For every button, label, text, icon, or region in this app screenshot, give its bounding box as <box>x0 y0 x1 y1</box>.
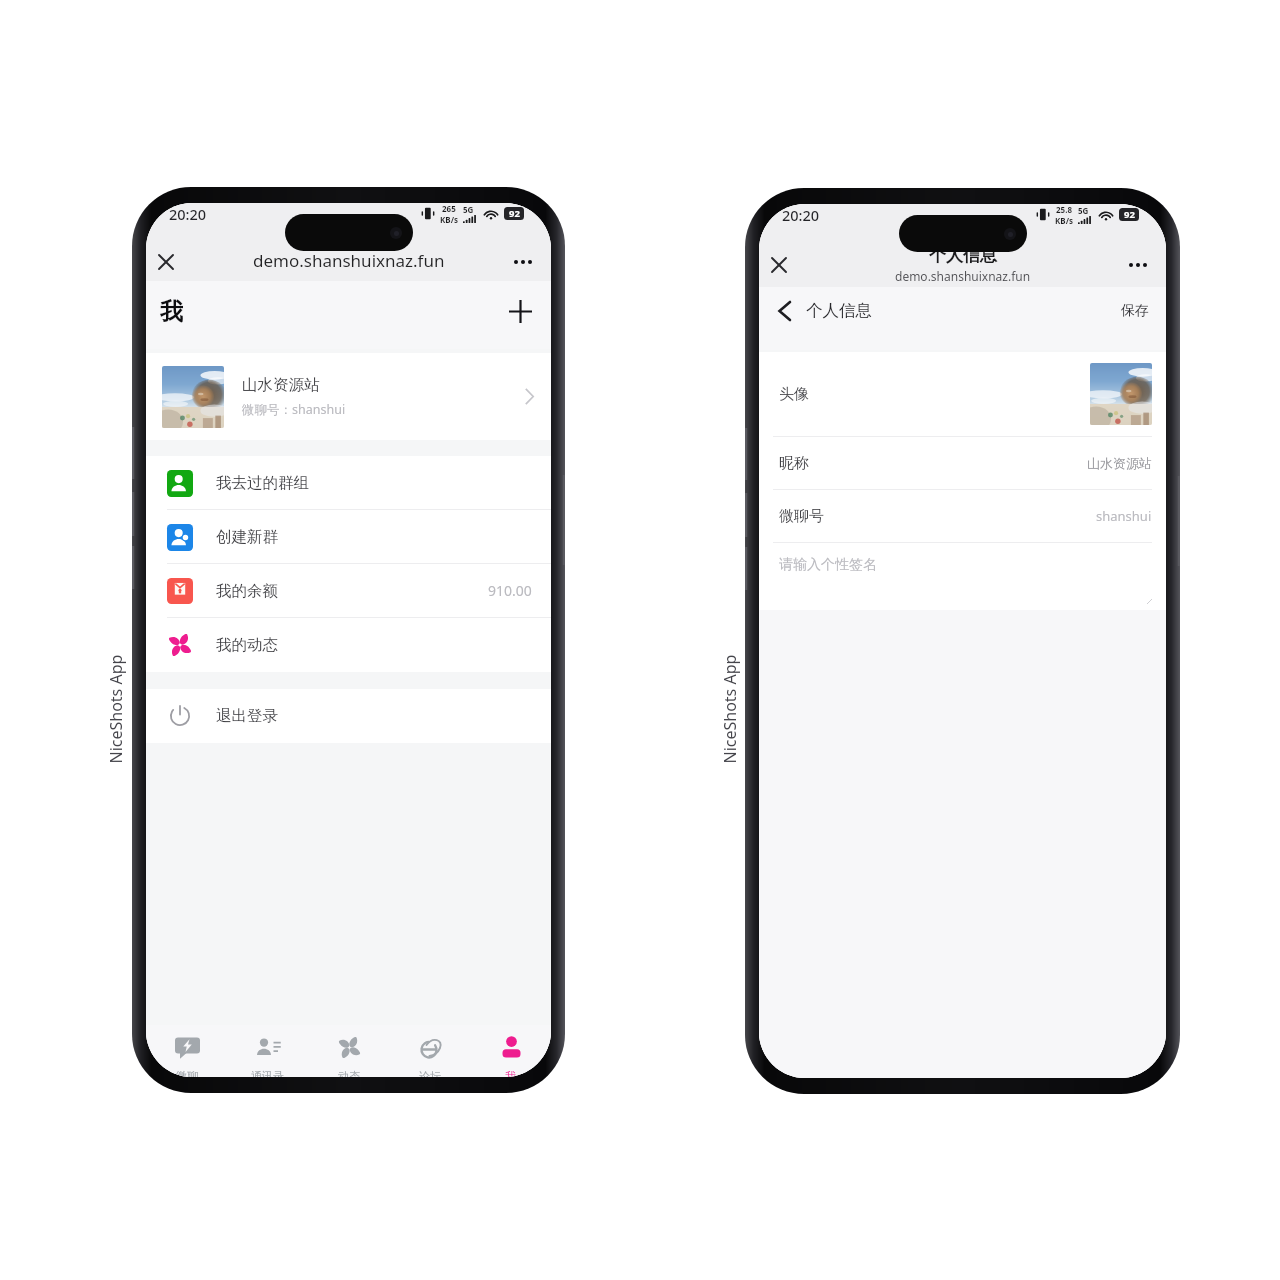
button[interactable]: More options <box>1119 246 1157 284</box>
button[interactable]: 山水资源站 <box>146 353 551 440</box>
staticText: 微聊号：shanshui <box>242 401 346 418</box>
staticText: 头像 <box>779 385 809 404</box>
staticText: 山水资源站 <box>1087 455 1152 471</box>
staticText: 请输入个性签名 <box>779 556 877 574</box>
staticText: 25.8 <box>1056 204 1072 215</box>
button[interactable]: 头像 <box>759 352 1166 437</box>
button[interactable]: Back to 个人信息 <box>772 294 878 327</box>
staticText: shanshui <box>1096 507 1152 525</box>
staticText: 265 <box>442 203 456 214</box>
staticText: 微聊号 <box>779 507 824 526</box>
staticText: 我 <box>160 297 183 326</box>
staticText: 92 <box>1124 208 1135 221</box>
staticText: 910.00 <box>488 581 532 600</box>
staticText: 个人信息 <box>929 245 997 266</box>
button[interactable]: More options <box>504 243 542 281</box>
staticText: 山水资源站 <box>242 375 320 395</box>
staticText: 20:20 <box>782 205 820 225</box>
staticText: 通讯录 <box>251 1069 284 1077</box>
button[interactable]: 我去过的群组 <box>146 456 551 510</box>
button[interactable]: Add <box>501 292 539 330</box>
staticText: 5G <box>1078 205 1089 216</box>
button[interactable]: 昵称 <box>759 437 1166 490</box>
staticText: KB/s <box>440 214 458 224</box>
staticText: NiceShots App <box>104 654 126 763</box>
staticText: 我去过的群组 <box>216 473 309 493</box>
button[interactable]: 微聊号 <box>759 490 1166 543</box>
button[interactable]: 动态 <box>308 1025 389 1077</box>
staticText: 个人信息 <box>806 300 872 321</box>
button[interactable]: 保存 <box>1117 298 1153 323</box>
button[interactable]: 通讯录 <box>227 1025 308 1077</box>
button[interactable]: 退出登录 <box>146 689 551 743</box>
staticText: demo.shanshuixnaz.fun <box>253 249 445 272</box>
staticText: 动态 <box>338 1069 360 1077</box>
staticText: 我的动态 <box>216 635 278 655</box>
staticText: 退出登录 <box>216 706 278 726</box>
button[interactable]: 我 <box>470 1025 551 1077</box>
staticText: 我 <box>505 1069 516 1077</box>
staticText: 20:20 <box>169 204 207 224</box>
staticText: 保存 <box>1121 302 1149 319</box>
staticText: 创建新群 <box>216 527 278 547</box>
button[interactable]: 微聊 <box>146 1025 227 1077</box>
staticText: 论坛 <box>419 1069 441 1077</box>
staticText: 92 <box>509 207 520 220</box>
staticText: NiceShots App <box>718 654 740 763</box>
button[interactable]: Close <box>760 246 798 284</box>
staticText: 我的余额 <box>216 581 278 601</box>
staticText: demo.shanshuixnaz.fun <box>895 268 1031 284</box>
button[interactable]: 我的余额 <box>146 564 551 618</box>
button[interactable]: 论坛 <box>389 1025 470 1077</box>
button[interactable]: 我的动态 <box>146 618 551 672</box>
button[interactable]: 创建新群 <box>146 510 551 564</box>
staticText: 微聊 <box>176 1069 198 1077</box>
staticText: 5G <box>463 204 474 215</box>
button[interactable]: Close <box>147 243 185 281</box>
staticText: KB/s <box>1055 215 1073 225</box>
staticText: 昵称 <box>779 454 809 473</box>
